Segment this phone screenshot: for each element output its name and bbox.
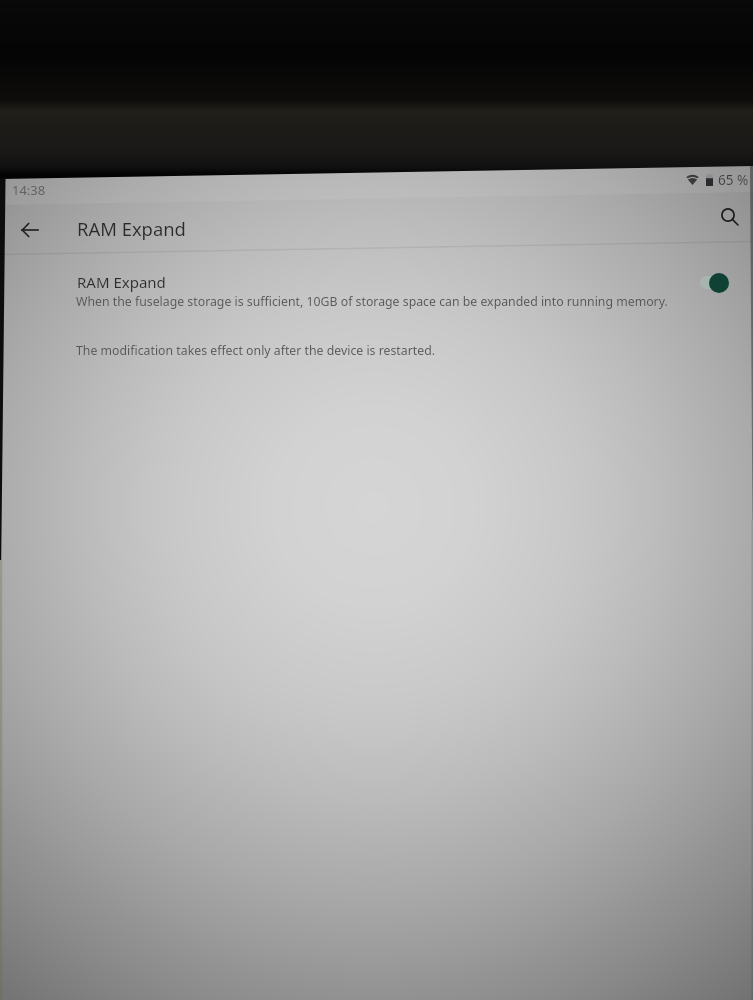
button[interactable]: Search — [710, 198, 750, 238]
staticText: RAM Expand — [77, 272, 166, 292]
staticText: RAM Expand — [77, 216, 186, 241]
button[interactable]: Back — [10, 210, 50, 250]
button[interactable] — [0, 262, 753, 314]
staticText: The modification takes effect only after… — [76, 342, 435, 359]
staticText: When the fuselage storage is sufficient,… — [76, 293, 668, 310]
staticText: 14:38 — [12, 181, 46, 199]
staticText: 65 % — [718, 171, 749, 189]
